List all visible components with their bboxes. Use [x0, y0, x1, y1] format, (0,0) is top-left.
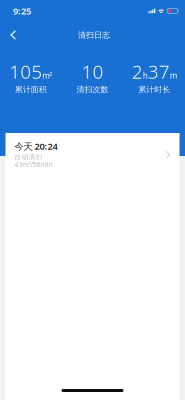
staticText: 清扫次数 — [76, 85, 108, 95]
staticText: 自动清扫 — [14, 153, 42, 161]
staticText: 9:25 — [13, 5, 31, 17]
staticText: h — [143, 70, 148, 81]
staticText: 今天 20:24 — [14, 140, 57, 152]
staticText: m² — [42, 70, 52, 81]
button[interactable]: 今天 20:24 — [5, 133, 179, 179]
staticText: 43m²/58min — [14, 160, 52, 169]
staticText: 累计面积 — [15, 85, 47, 95]
staticText: 累计时长 — [138, 85, 170, 95]
button[interactable]: Back — [3, 23, 23, 47]
staticText: 2 — [132, 59, 143, 84]
staticText: m — [170, 70, 177, 81]
staticText: 37 — [148, 59, 170, 84]
staticText: 清扫日志 — [78, 30, 110, 40]
staticText: 10 — [81, 59, 103, 84]
staticText: 105 — [9, 59, 42, 84]
